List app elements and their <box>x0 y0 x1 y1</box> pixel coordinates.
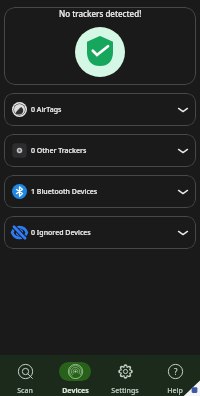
button[interactable]: 1 Bluetooth Devices <box>4 175 196 208</box>
button[interactable]: 0 Ignored Devices <box>4 216 196 249</box>
staticText: 0 Ignored Devices <box>31 228 91 238</box>
staticText: 0 Other Trackers <box>31 146 87 156</box>
button[interactable]: Devices <box>50 355 100 396</box>
staticText: 0 AirTags <box>31 105 62 115</box>
staticText: Settings <box>111 386 139 396</box>
other: Devices <box>68 364 83 379</box>
button[interactable]: 0 AirTags <box>4 93 196 126</box>
staticText: No trackers detected! <box>59 8 142 19</box>
staticText: ? <box>174 366 178 377</box>
button[interactable]: 0 Other Trackers <box>4 134 196 167</box>
button[interactable]: Help <box>150 355 200 396</box>
staticText: 1 Bluetooth Devices <box>31 187 98 197</box>
button[interactable]: Settings <box>100 355 150 396</box>
staticText: Scan <box>17 386 33 396</box>
button[interactable]: Scan <box>0 355 50 396</box>
other: Help <box>168 364 183 379</box>
other: Scan <box>18 364 33 379</box>
staticText: Help <box>167 386 183 396</box>
staticText: Devices <box>62 386 89 396</box>
other: Settings <box>118 364 133 379</box>
